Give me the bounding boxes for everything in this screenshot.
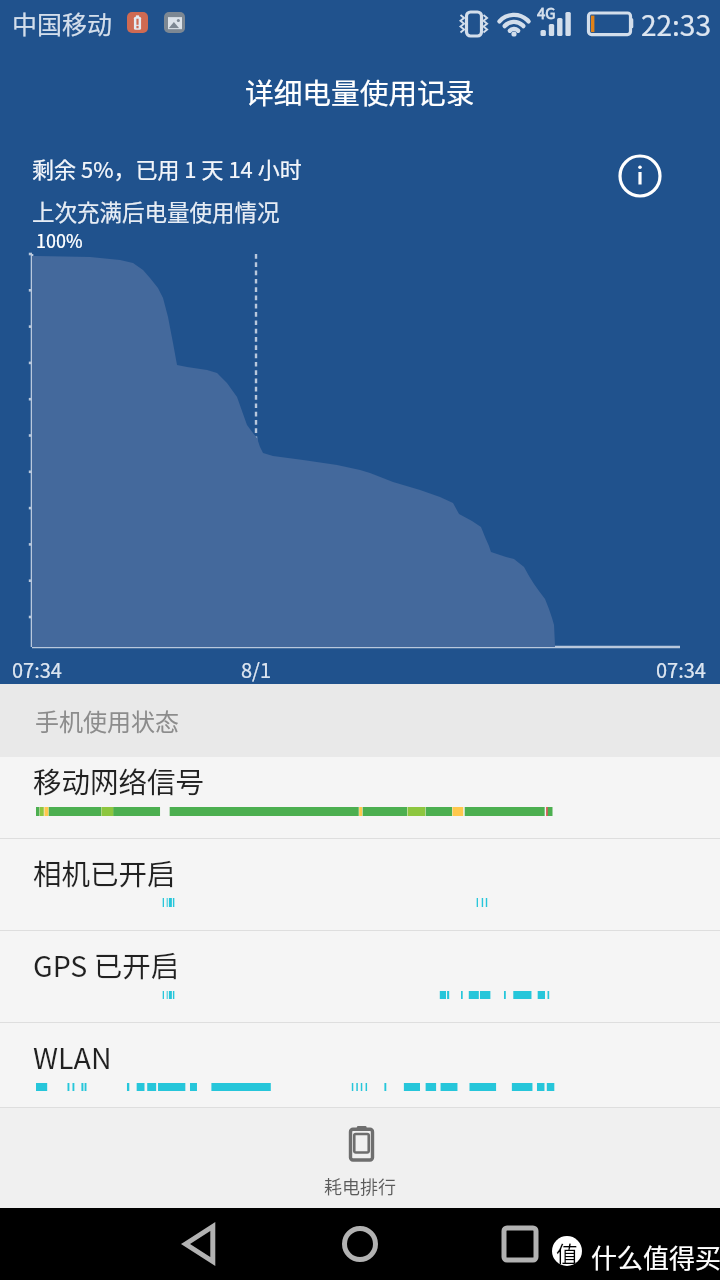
button[interactable]: Home [320, 1216, 400, 1272]
button[interactable]: 耗电排行 [0, 1108, 720, 1208]
staticText: 22:33 [641, 4, 711, 45]
button[interactable]: Info [614, 150, 666, 202]
staticText: 上次充满后电量使用情况 [32, 195, 280, 228]
button[interactable]: WLAN [0, 1023, 720, 1108]
staticText: 手机使用状态 [35, 703, 179, 738]
staticText: 什么值得买 [591, 1238, 720, 1276]
staticText: 8/1 [241, 655, 272, 684]
button[interactable]: 移动网络信号 [0, 757, 720, 839]
button[interactable]: 相机已开启 [0, 839, 720, 931]
staticText: 4G [537, 2, 556, 24]
staticText: 值 [556, 1236, 579, 1266]
staticText: 移动网络信号 [33, 760, 205, 801]
staticText: WLAN [33, 1036, 112, 1077]
button[interactable]: Recents [480, 1216, 560, 1272]
staticText: 07:34 [12, 655, 62, 684]
staticText: 07:34 [656, 655, 706, 684]
staticText: 剩余 5%，已用 1 天 14 小时 [32, 152, 302, 184]
staticText: 中国移动 [12, 5, 113, 41]
staticText: 耗电排行 [324, 1173, 396, 1199]
staticText: 详细电量使用记录 [245, 71, 475, 113]
staticText: 100% [36, 227, 83, 253]
button[interactable]: Back [160, 1216, 240, 1272]
staticText: 相机已开启 [33, 852, 176, 893]
button[interactable]: GPS 已开启 [0, 931, 720, 1023]
staticText: GPS 已开启 [33, 944, 180, 985]
